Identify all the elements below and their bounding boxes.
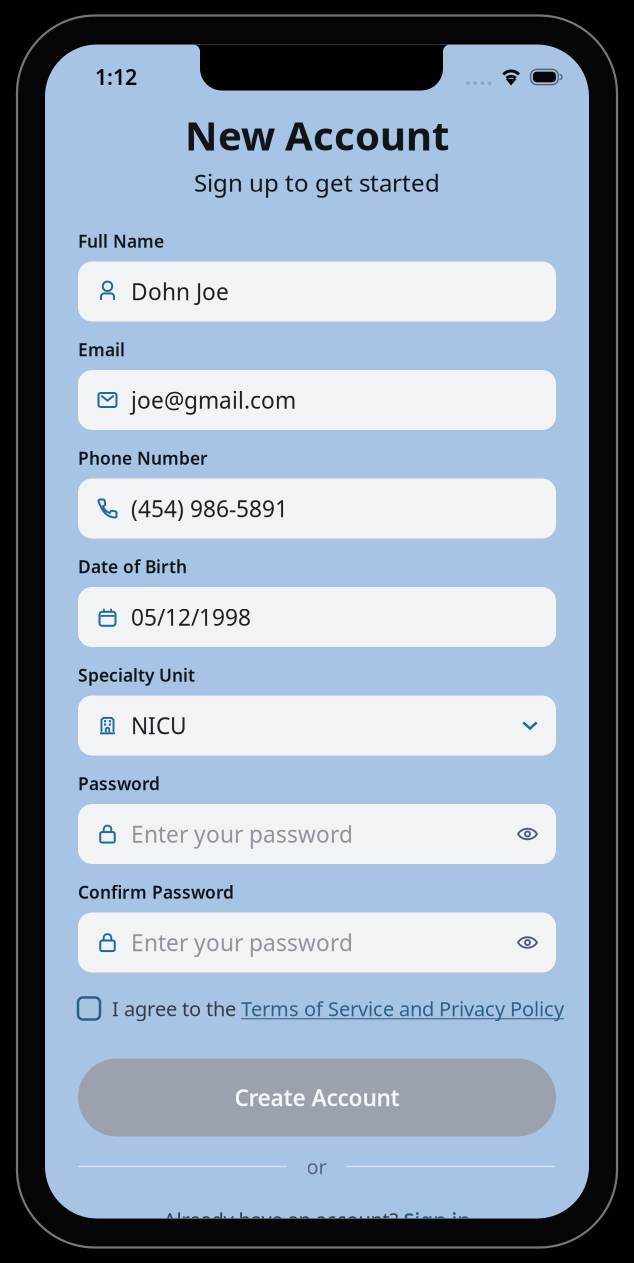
- staticText: NICU: [131, 710, 187, 740]
- staticText: Create Account: [234, 1082, 399, 1112]
- button[interactable]: Enter your password: [78, 912, 556, 972]
- staticText: Specialty Unit: [78, 663, 195, 686]
- staticText: 05/12/1998: [131, 602, 251, 632]
- staticText: Date of Birth: [78, 555, 187, 578]
- staticText: Sign up to get started: [194, 166, 440, 198]
- staticText: I agree to the: [112, 995, 241, 1022]
- button[interactable]: 05/12/1998: [78, 587, 556, 647]
- button[interactable]: Dohn Joe: [78, 261, 556, 321]
- staticText: Password: [78, 772, 160, 795]
- button[interactable]: joe@gmail.com: [78, 370, 556, 430]
- staticText: Confirm Password: [78, 880, 234, 903]
- button[interactable]: Enter your password: [78, 804, 556, 864]
- staticText: Full Name: [78, 229, 164, 252]
- staticText: New Account: [185, 108, 449, 162]
- staticText: Sign in: [403, 1206, 470, 1233]
- staticText: Enter your password: [131, 819, 353, 849]
- staticText: Phone Number: [78, 446, 208, 469]
- staticText: Dohn Joe: [131, 276, 229, 306]
- button[interactable]: (454) 986-5891: [78, 478, 556, 538]
- staticText: or: [306, 1153, 326, 1180]
- staticText: Enter your password: [131, 927, 353, 957]
- button[interactable]: Create Account: [78, 1058, 556, 1136]
- staticText: Terms of Service and Privacy Policy: [241, 995, 564, 1022]
- staticText: Already have an account?: [163, 1206, 403, 1233]
- button[interactable]: Already have an account?: [45, 1206, 589, 1232]
- staticText: 1:12: [95, 62, 137, 91]
- button[interactable]: I agree to the: [78, 993, 589, 1023]
- staticText: Email: [78, 338, 125, 361]
- staticText: joe@gmail.com: [131, 385, 296, 415]
- button[interactable]: NICU: [78, 695, 556, 755]
- staticText: (454) 986-5891: [131, 493, 288, 523]
